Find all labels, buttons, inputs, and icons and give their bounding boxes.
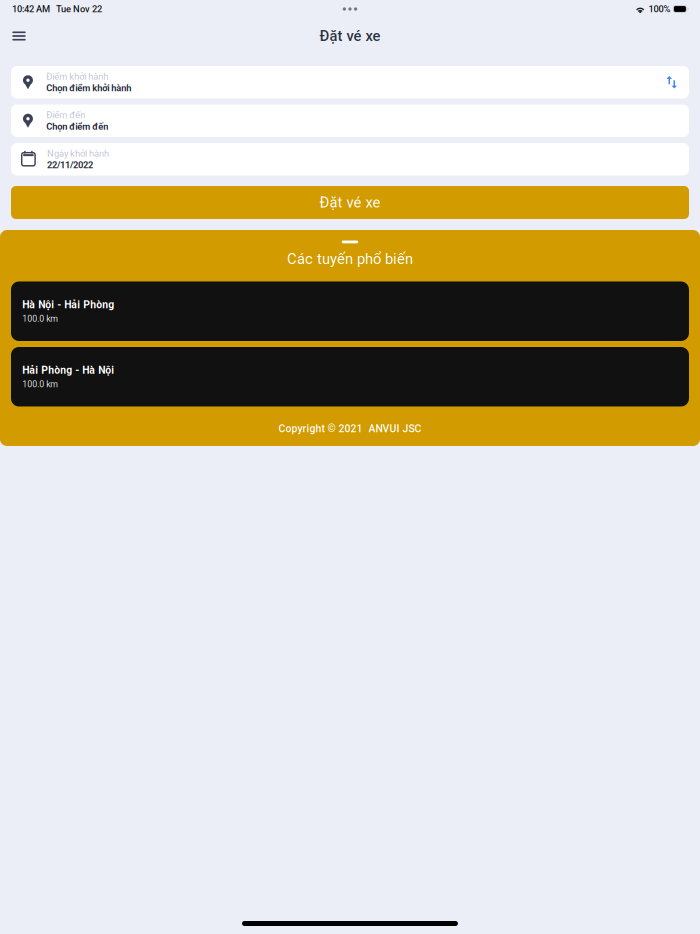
staticText: Chọn điểm khởi hành bbox=[46, 82, 131, 93]
staticText: Copyright © 2021 ANVUI JSC bbox=[278, 422, 421, 435]
staticText: 100.0 km bbox=[22, 379, 58, 389]
staticText: 100% bbox=[648, 3, 670, 14]
staticText: Đặt vé xe bbox=[319, 194, 380, 211]
button[interactable]: Hải Phòng - Hà Nội bbox=[11, 347, 689, 406]
button[interactable]: Điểm khởi hành bbox=[11, 66, 689, 98]
staticText: Ngày khởi hành bbox=[47, 148, 109, 159]
staticText: Các tuyến phổ biến bbox=[287, 250, 413, 267]
button[interactable]: Ngày khởi hành bbox=[11, 143, 689, 175]
button[interactable]: Menu bbox=[3, 21, 35, 51]
staticText: Hà Nội - Hải Phòng bbox=[22, 298, 114, 311]
staticText: 10:42 AM Tue Nov 22 bbox=[12, 3, 102, 14]
staticText: 100.0 km bbox=[22, 314, 58, 324]
staticText: Đặt vé xe bbox=[319, 27, 380, 45]
button[interactable]: Hà Nội - Hải Phòng bbox=[11, 281, 689, 341]
button[interactable]: Đặt vé xe bbox=[11, 186, 689, 219]
staticText: Hải Phòng - Hà Nội bbox=[22, 364, 114, 376]
staticText: Điểm khởi hành bbox=[46, 71, 108, 82]
staticText: 22/11/2022 bbox=[47, 159, 93, 170]
staticText: Điểm đến bbox=[46, 110, 85, 120]
staticText: Chọn điểm đến bbox=[46, 121, 108, 132]
button[interactable]: Điểm đến bbox=[11, 104, 689, 137]
